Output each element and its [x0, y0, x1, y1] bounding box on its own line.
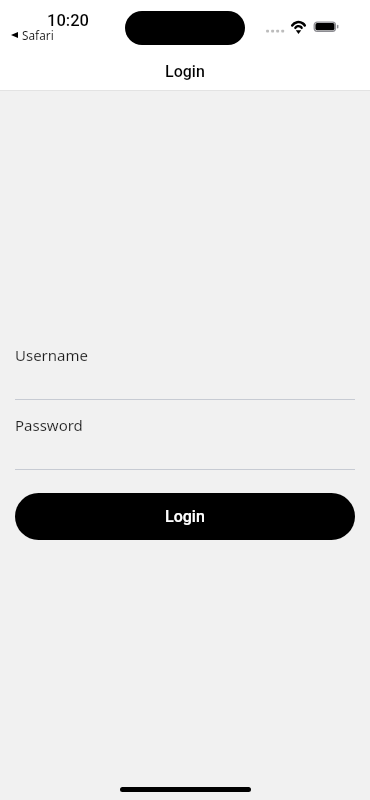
- staticText: Password: [15, 415, 83, 435]
- button[interactable]: Back to Safari: [9, 27, 57, 41]
- button[interactable]: Password: [15, 414, 355, 470]
- staticText: Login: [165, 62, 205, 81]
- staticText: Safari: [22, 27, 54, 41]
- button[interactable]: Login: [15, 493, 355, 540]
- staticText: 10:20: [47, 11, 89, 30]
- staticText: Username: [15, 345, 88, 365]
- staticText: Login: [165, 507, 205, 526]
- button[interactable]: Username: [15, 344, 355, 400]
